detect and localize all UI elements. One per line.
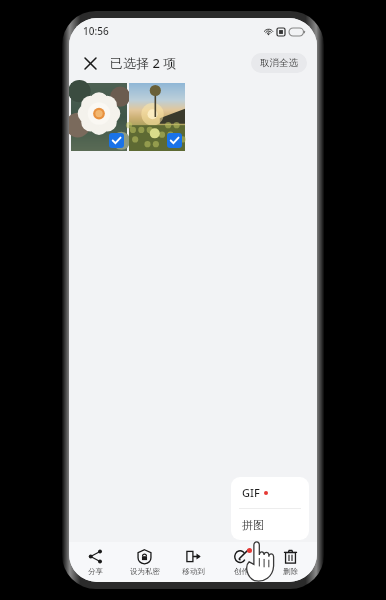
staticText: 移动到 — [182, 567, 205, 576]
button[interactable]: 取消全选 — [251, 53, 307, 73]
button[interactable]: 删除 — [268, 542, 313, 582]
button[interactable] — [71, 83, 127, 151]
staticText: 创作 — [234, 567, 249, 576]
staticText: 删除 — [283, 567, 298, 576]
button[interactable] — [129, 83, 185, 151]
button[interactable]: 分享 — [73, 542, 118, 582]
staticText: 10:56 — [83, 24, 109, 38]
staticText: 取消全选 — [260, 57, 298, 69]
button[interactable]: 移动到 — [171, 542, 216, 582]
button[interactable]: 创作 — [219, 542, 264, 582]
button[interactable]: 拼图 — [231, 509, 309, 540]
button[interactable]: Close — [77, 50, 103, 76]
staticText: GIF — [242, 485, 260, 500]
staticText: 已选择 2 项 — [110, 54, 177, 72]
button[interactable]: 设为私密 — [122, 542, 167, 582]
staticText: 拼图 — [242, 518, 264, 532]
staticText: 分享 — [88, 567, 103, 576]
button[interactable]: GIF — [231, 477, 309, 508]
staticText: 设为私密 — [130, 567, 160, 576]
